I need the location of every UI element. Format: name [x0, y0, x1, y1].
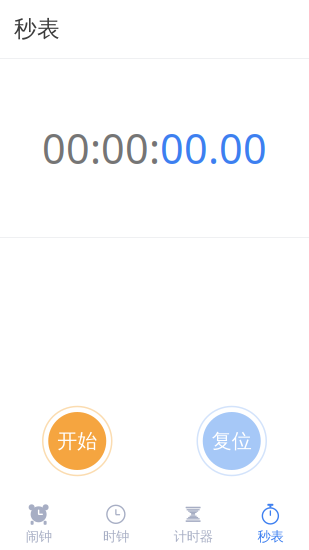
staticText: 闹钟 [26, 528, 52, 545]
staticText: 00.00 [160, 121, 267, 175]
staticText: 计时器 [174, 528, 213, 545]
button[interactable]: 秒表 [232, 498, 309, 550]
staticText: 秒表 [14, 15, 60, 43]
button[interactable]: 时钟 [77, 498, 154, 550]
staticText: 复位 [212, 429, 252, 453]
button[interactable]: 复位 [196, 405, 268, 477]
button[interactable]: 计时器 [154, 498, 232, 550]
staticText: 开始 [57, 429, 97, 453]
button[interactable]: 开始 [41, 405, 113, 477]
staticText: 00:00: [42, 121, 160, 175]
button[interactable]: 闹钟 [0, 498, 77, 550]
staticText: 秒表 [257, 528, 283, 545]
staticText: 时钟 [103, 528, 129, 545]
